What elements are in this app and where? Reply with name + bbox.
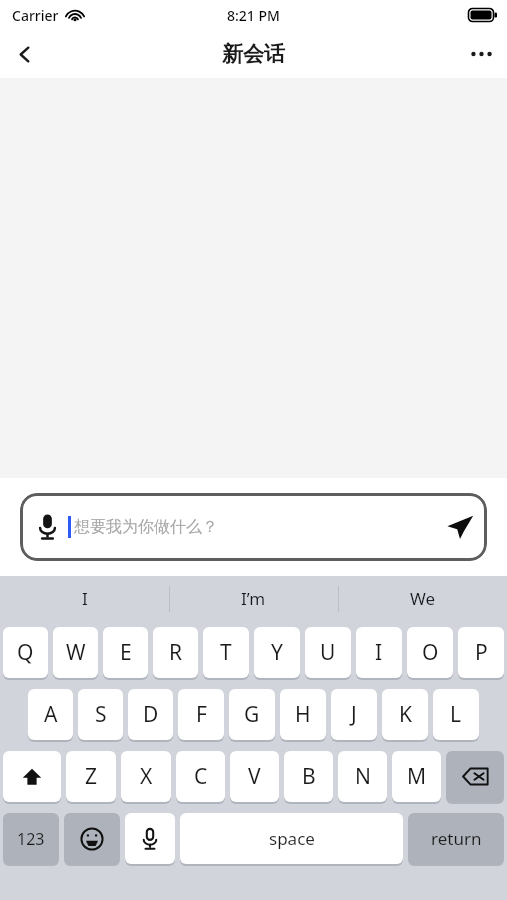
button[interactable]: 想要我为你做什么？ <box>20 493 487 561</box>
button[interactable]: P <box>458 627 504 678</box>
staticText: X <box>140 762 153 791</box>
button[interactable]: return <box>408 813 504 864</box>
staticText: I <box>82 587 88 610</box>
staticText: 8:21 PM <box>227 6 280 25</box>
button[interactable]: I’m <box>169 576 338 621</box>
button[interactable]: R <box>153 627 198 678</box>
button[interactable]: Z <box>66 751 116 802</box>
button[interactable]: I <box>0 576 169 621</box>
staticText: H <box>295 700 311 729</box>
button[interactable]: Send <box>435 502 485 552</box>
button[interactable]: Q <box>3 627 48 678</box>
button[interactable]: A <box>28 689 73 740</box>
button[interactable]: X <box>121 751 171 802</box>
staticText: Q <box>17 638 34 667</box>
staticText: N <box>355 762 371 791</box>
button[interactable]: V <box>230 751 279 802</box>
staticText: T <box>220 638 232 667</box>
staticText: We <box>410 587 436 610</box>
button[interactable]: 123 <box>3 813 59 864</box>
staticText: A <box>44 700 58 729</box>
staticText: space <box>269 827 315 850</box>
button[interactable]: T <box>203 627 249 678</box>
button[interactable]: space <box>180 813 403 864</box>
staticText: Y <box>271 638 283 667</box>
staticText: Z <box>85 762 98 791</box>
button[interactable]: B <box>284 751 333 802</box>
button[interactable]: U <box>305 627 351 678</box>
button[interactable]: I <box>356 627 402 678</box>
staticText: return <box>431 827 482 850</box>
button[interactable]: G <box>229 689 275 740</box>
button[interactable]: W <box>53 627 98 678</box>
button[interactable]: O <box>407 627 453 678</box>
staticText: P <box>475 638 488 667</box>
button[interactable]: We <box>338 576 507 621</box>
staticText: F <box>196 700 207 729</box>
staticText: W <box>66 638 86 667</box>
button[interactable]: S <box>78 689 123 740</box>
button[interactable]: Delete <box>446 751 504 802</box>
staticText: I’m <box>241 587 266 610</box>
button[interactable]: F <box>178 689 224 740</box>
staticText: G <box>244 700 260 729</box>
staticText: I <box>375 638 383 667</box>
button[interactable]: H <box>280 689 326 740</box>
button[interactable]: N <box>338 751 387 802</box>
button[interactable]: J <box>331 689 377 740</box>
button[interactable]: C <box>176 751 225 802</box>
staticText: Carrier <box>12 6 59 25</box>
button[interactable]: Back <box>0 30 48 78</box>
staticText: O <box>422 638 439 667</box>
button[interactable]: M <box>392 751 441 802</box>
button[interactable]: Shift <box>3 751 61 802</box>
button[interactable]: K <box>382 689 428 740</box>
staticText: K <box>399 700 412 729</box>
staticText: S <box>95 700 107 729</box>
button[interactable]: E <box>103 627 148 678</box>
staticText: 123 <box>17 828 45 850</box>
staticText: B <box>302 762 316 791</box>
button[interactable]: D <box>128 689 173 740</box>
staticText: J <box>351 700 357 729</box>
staticText: C <box>194 762 208 791</box>
button[interactable]: Voice input <box>125 813 175 864</box>
staticText: V <box>248 762 261 791</box>
staticText: M <box>407 762 427 791</box>
staticText: L <box>450 700 462 729</box>
button[interactable]: More options <box>455 30 507 78</box>
staticText: E <box>120 638 132 667</box>
button[interactable]: Emoji <box>64 813 120 864</box>
staticText: 想要我为你做什么？ <box>74 517 218 537</box>
staticText: R <box>169 638 183 667</box>
button[interactable]: Y <box>254 627 300 678</box>
staticText: 新会话 <box>222 41 285 67</box>
button[interactable]: L <box>433 689 479 740</box>
staticText: D <box>143 700 159 729</box>
staticText: U <box>320 638 336 667</box>
